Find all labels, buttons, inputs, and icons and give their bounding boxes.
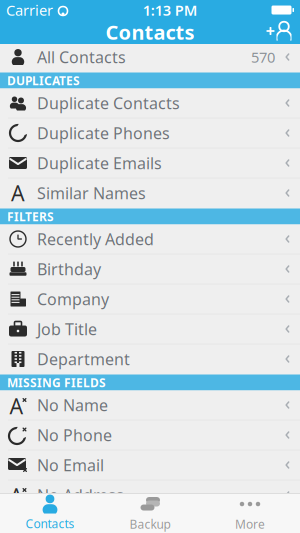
button[interactable]: Duplicate Phones <box>0 118 300 148</box>
button[interactable]: Company <box>0 284 300 314</box>
staticText: A <box>11 179 25 207</box>
button[interactable]: Contacts <box>0 494 100 532</box>
button[interactable]: Job Title <box>0 314 300 344</box>
button[interactable]: Birthday <box>0 254 300 284</box>
staticText: All Contacts <box>37 46 126 68</box>
staticText: Company <box>37 288 109 310</box>
button[interactable]: A <box>0 480 300 510</box>
button[interactable]: Add Contact <box>262 20 300 44</box>
button[interactable]: No Phone <box>0 420 300 450</box>
button[interactable]: A <box>0 390 300 420</box>
staticText: 570 <box>251 47 275 67</box>
staticText: Birthday <box>37 258 101 280</box>
staticText: MISSING FIELDS <box>7 374 106 390</box>
staticText: No Address <box>37 484 124 506</box>
staticText: Duplicate Phones <box>37 122 170 144</box>
button[interactable]: A <box>0 178 300 208</box>
button[interactable]: Backup <box>100 494 200 532</box>
button[interactable]: More <box>200 494 300 532</box>
button[interactable]: Duplicate Emails <box>0 148 300 178</box>
button[interactable]: Recently Added <box>0 224 300 254</box>
staticText: Carrier <box>6 0 53 20</box>
button[interactable]: All Contacts <box>0 42 300 72</box>
staticText: Job Title <box>37 318 97 340</box>
staticText: Duplicate Emails <box>37 152 162 174</box>
button[interactable]: Department <box>0 344 300 374</box>
staticText: Recently Added <box>37 228 154 250</box>
staticText: FILTERS <box>7 208 54 224</box>
staticText: Similar Names <box>37 182 146 204</box>
staticText: Contacts <box>105 19 194 45</box>
staticText: Department <box>37 348 130 370</box>
staticText: Contacts <box>25 515 74 531</box>
staticText: A <box>9 392 23 420</box>
staticText: More <box>235 516 265 532</box>
staticText: DUPLICATES <box>7 72 80 88</box>
button[interactable]: No Email <box>0 450 300 480</box>
staticText: Duplicate Contacts <box>37 92 180 114</box>
button[interactable]: Duplicate Contacts <box>0 88 300 118</box>
staticText: No Phone <box>37 424 112 446</box>
staticText: No Email <box>37 454 104 476</box>
staticText: Backup <box>129 516 170 532</box>
staticText: 1:13 PM <box>143 0 198 20</box>
staticText: A <box>9 482 23 510</box>
staticText: No Name <box>37 394 108 416</box>
